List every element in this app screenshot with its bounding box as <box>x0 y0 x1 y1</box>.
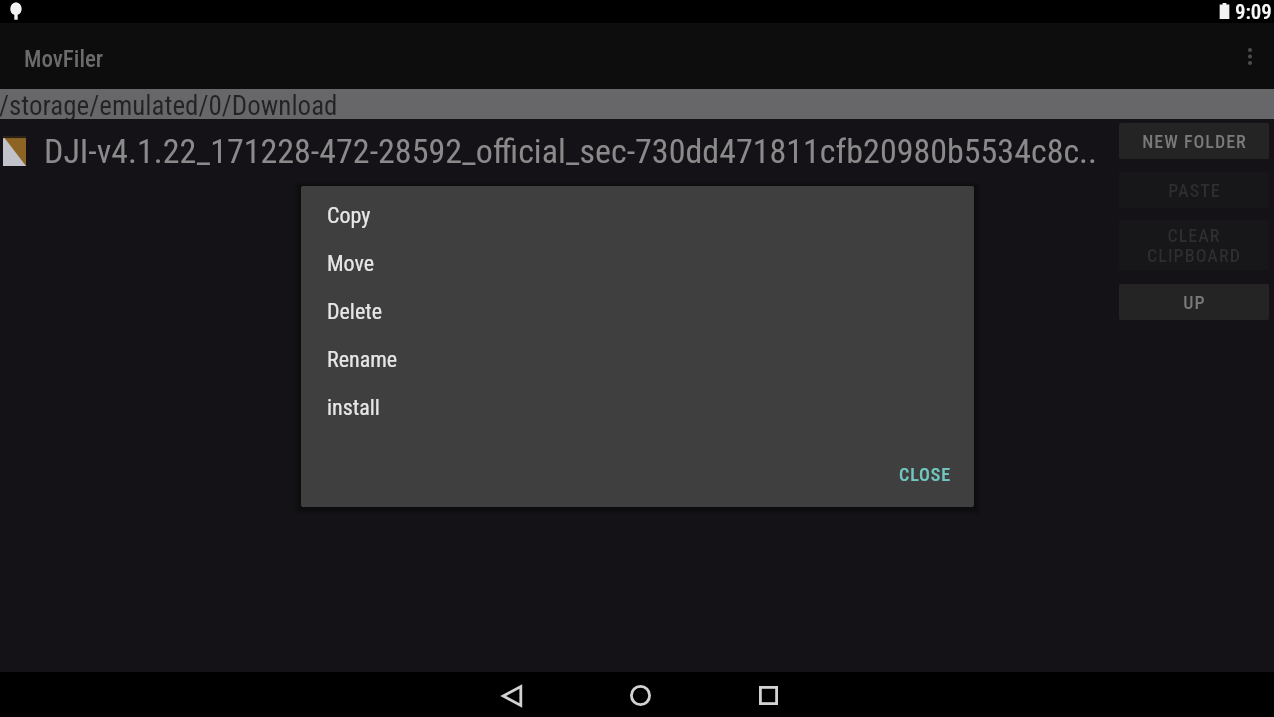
button[interactable]: install <box>301 384 974 432</box>
staticText: MovFiler <box>24 46 104 73</box>
button[interactable]: UP <box>1119 284 1269 320</box>
staticText: install <box>327 395 380 421</box>
button[interactable]: DJI-v4.1.22_171228-472-28592_official_se… <box>0 126 1274 176</box>
staticText: Rename <box>327 347 398 373</box>
button[interactable]: Delete <box>301 288 974 336</box>
staticText: Move <box>327 251 375 277</box>
button[interactable]: More options <box>1226 32 1274 80</box>
button[interactable]: Copy <box>301 192 974 240</box>
staticText: UP <box>1183 292 1206 313</box>
button[interactable]: Recents <box>704 673 832 717</box>
button[interactable]: CLEAR CLIPBOARD <box>1119 220 1269 270</box>
staticText: PASTE <box>1168 180 1221 201</box>
button[interactable]: CLOSE <box>887 456 964 493</box>
button[interactable]: Move <box>301 240 974 288</box>
button[interactable]: Home <box>576 673 704 717</box>
staticText: CLEAR CLIPBOARD <box>1147 225 1241 266</box>
button[interactable]: Rename <box>301 336 974 384</box>
button[interactable]: NEW FOLDER <box>1119 123 1269 159</box>
staticText: Delete <box>327 299 383 325</box>
staticText: /storage/emulated/0/Download <box>0 90 338 120</box>
staticText: CLOSE <box>899 464 952 485</box>
staticText: DJI-v4.1.22_171228-472-28592_official_se… <box>44 131 1098 171</box>
staticText: Copy <box>327 203 371 229</box>
button[interactable]: PASTE <box>1119 172 1269 208</box>
staticText: NEW FOLDER <box>1142 131 1247 152</box>
staticText: 9:09 <box>1235 0 1272 23</box>
button[interactable]: Back <box>448 673 576 717</box>
